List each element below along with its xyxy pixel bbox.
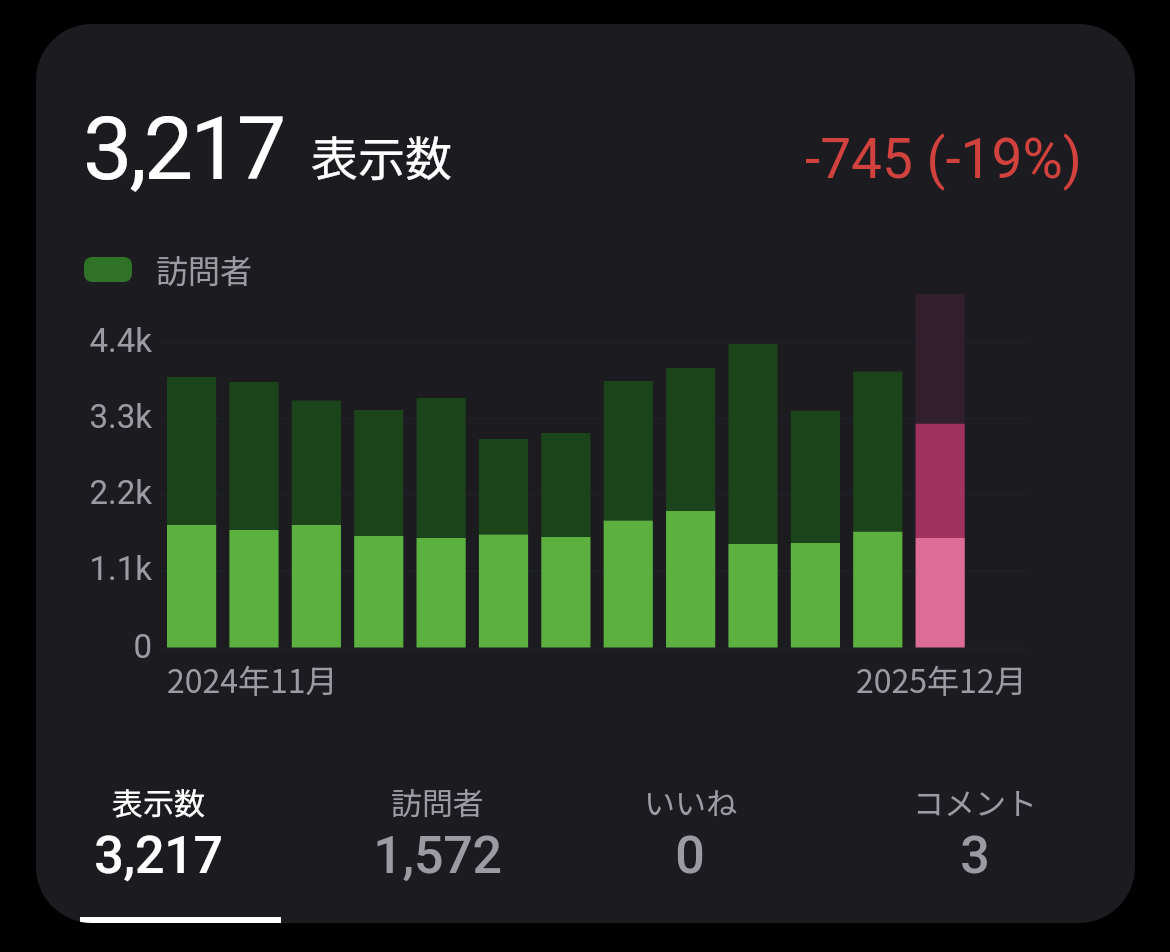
staticText: コメント <box>913 779 1037 824</box>
button[interactable]: 訪問者 <box>297 779 577 886</box>
staticText: 2024年11月 <box>167 656 338 702</box>
staticText: 2025年12月 <box>856 656 1027 702</box>
staticText: 表示数 <box>311 121 452 189</box>
button[interactable]: コメント <box>835 779 1115 886</box>
staticText: 訪問者 <box>391 779 484 824</box>
staticText: 3,217 <box>83 97 284 200</box>
staticText: 1,572 <box>373 825 502 886</box>
staticText: 4.4k <box>59 321 152 360</box>
staticText: 3 <box>960 825 990 886</box>
button[interactable]: 表示数 <box>36 779 298 886</box>
staticText: 表示数 <box>112 779 205 824</box>
staticText: 3.3k <box>59 397 152 436</box>
staticText: 0 <box>675 825 705 886</box>
button[interactable]: 訪問者 <box>84 246 253 292</box>
staticText: 2.2k <box>59 473 152 512</box>
staticText: 訪問者 <box>156 246 253 292</box>
staticText: いいね <box>644 779 737 824</box>
staticText: 1.1k <box>59 549 152 588</box>
staticText: -745 (-19%) <box>805 127 1082 191</box>
staticText: 0 <box>59 627 152 666</box>
button[interactable]: いいね <box>550 779 830 886</box>
staticText: 3,217 <box>94 825 223 886</box>
button[interactable]: 3,217 <box>36 24 1135 923</box>
